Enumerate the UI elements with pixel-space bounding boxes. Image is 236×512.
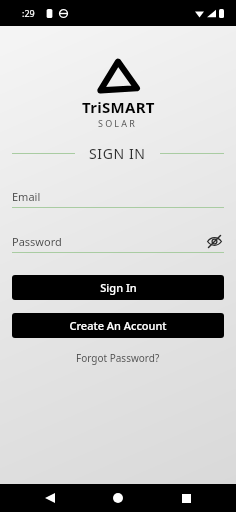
staticText: SIGN IN xyxy=(89,144,146,163)
staticText: Forgot Password? xyxy=(76,351,160,365)
button[interactable]: Email xyxy=(12,185,224,208)
button[interactable]: Home xyxy=(100,484,136,512)
staticText: TriSMART xyxy=(82,97,155,117)
button[interactable]: Recent apps xyxy=(168,484,204,512)
staticText: Email xyxy=(12,189,41,204)
button[interactable]: Password xyxy=(12,230,224,253)
button[interactable]: Toggle password visibility xyxy=(204,231,224,251)
button[interactable]: Back xyxy=(32,484,68,512)
staticText: Sign In xyxy=(100,280,137,295)
staticText: Create An Account xyxy=(69,318,167,333)
button[interactable]: Forgot Password? xyxy=(0,351,236,365)
staticText: :29 xyxy=(22,7,35,19)
staticText: SOLAR xyxy=(98,117,138,129)
button[interactable]: Sign In xyxy=(12,275,224,300)
button[interactable]: Create An Account xyxy=(12,313,224,338)
staticText: Password xyxy=(12,234,62,249)
